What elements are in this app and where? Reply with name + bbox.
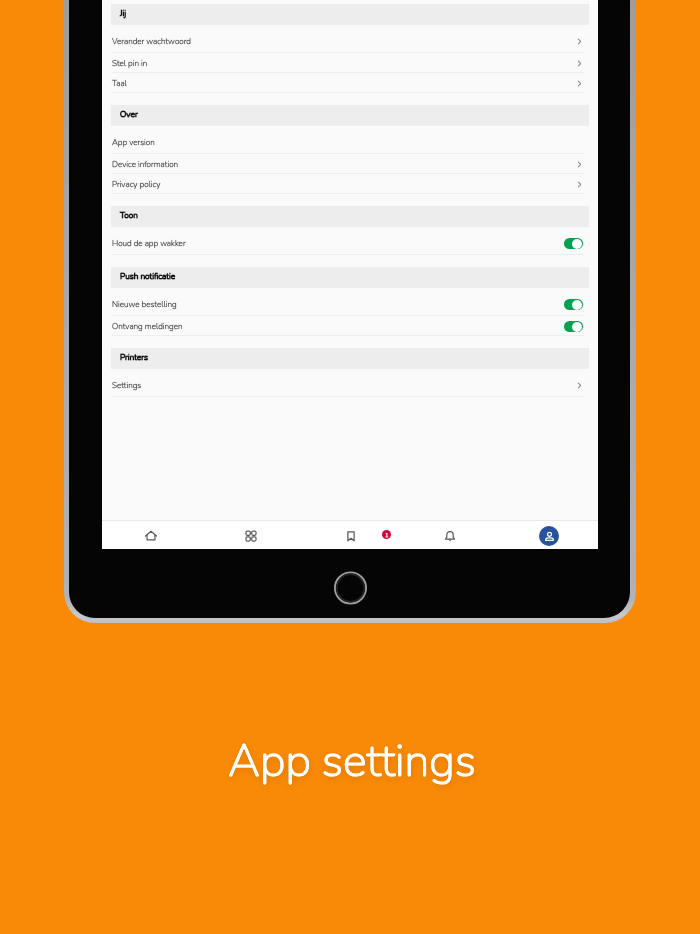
staticText: Toon [120,210,138,221]
button[interactable]: Settings [102,373,598,397]
staticText: Taal [112,78,127,89]
staticText: Printers [120,352,148,363]
staticText: App version [112,137,155,148]
button[interactable]: Ontvang meldingen [102,316,598,336]
staticText: Stel pin in [112,58,148,69]
staticText: Settings [112,380,142,391]
other: Home [145,530,157,542]
staticText: Push notificatie [120,271,176,282]
staticText: 1 [385,531,389,539]
button[interactable]: Printers [111,348,589,369]
button[interactable]: Notifications [437,523,463,549]
staticText: Verander wachtwoord [112,36,191,47]
button[interactable]: Privacy policy [102,174,598,194]
button[interactable]: Jij [111,4,589,25]
button[interactable]: Toggle Nieuwe bestelling [564,299,583,310]
button[interactable]: Toon [111,206,589,227]
staticText: App settings [228,731,476,792]
staticText: Nieuwe bestelling [112,299,177,310]
staticText: Ontvang meldingen [112,321,183,332]
button[interactable]: Device information [102,154,598,174]
button[interactable]: Stel pin in [102,53,598,73]
staticText: Device information [112,159,179,170]
staticText: App version [112,137,155,148]
button[interactable]: Profile [536,523,562,549]
staticText: Jij [120,8,127,19]
button[interactable]: Verander wachtwoord [102,29,598,53]
button[interactable]: App version [102,130,598,154]
button[interactable]: Apps [238,523,264,549]
button[interactable]: Orders [373,523,399,549]
staticText: Houd de app wakker [112,238,186,249]
button[interactable]: Home [138,523,164,549]
staticText: Taal [112,78,127,89]
staticText: Houd de app wakker [112,238,186,249]
staticText: Over [120,109,138,120]
other: Apps [246,531,256,541]
other: Notifications [444,530,456,542]
staticText: Ontvang meldingen [112,321,183,332]
staticText: Privacy policy [112,179,161,190]
other: Bookmarks [345,530,357,542]
staticText: Toon [120,210,138,221]
staticText: Over [120,109,138,120]
button[interactable]: Taal [102,73,598,93]
staticText: Nieuwe bestelling [112,299,177,310]
staticText: Push notificatie [120,271,176,282]
staticText: Device information [112,159,179,170]
staticText: Settings [112,380,142,391]
staticText: Verander wachtwoord [112,36,191,47]
button[interactable]: Toggle Ontvang meldingen [564,321,583,332]
button[interactable]: Push notificatie [111,267,589,288]
staticText: App settings [228,731,476,792]
staticText: Jij [120,8,127,19]
button[interactable]: Nieuwe bestelling [102,292,598,316]
button[interactable]: Houd de app wakker [102,231,598,255]
staticText: App settings [228,731,476,792]
staticText: Printers [120,352,148,363]
button[interactable]: Bookmarks [338,523,364,549]
button[interactable]: Over [111,105,589,126]
button[interactable]: Toggle Houd de app wakker [564,238,583,249]
staticText: Privacy policy [112,179,161,190]
staticText: Stel pin in [112,58,148,69]
